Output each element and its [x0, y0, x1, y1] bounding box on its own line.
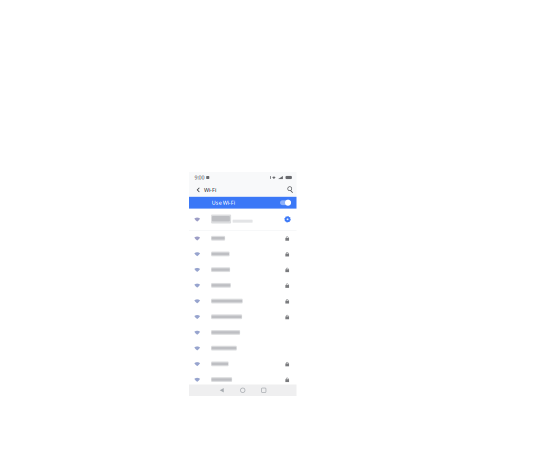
button[interactable]: [189, 209, 296, 230]
button[interactable]: [189, 230, 296, 246]
button[interactable]: [189, 340, 296, 356]
button[interactable]: [189, 309, 296, 325]
staticText: Use Wi-Fi: [212, 199, 235, 206]
button[interactable]: [189, 246, 296, 262]
button[interactable]: [189, 277, 296, 293]
staticText: Wi-Fi: [204, 186, 216, 193]
button[interactable]: Back: [193, 183, 202, 197]
button[interactable]: [189, 293, 296, 309]
button[interactable]: [189, 356, 296, 372]
staticText: 9:00: [195, 174, 205, 181]
button[interactable]: Recents: [257, 384, 270, 396]
button[interactable]: Search: [286, 183, 295, 197]
button[interactable]: [189, 372, 296, 387]
button[interactable]: Back: [215, 384, 228, 396]
button[interactable]: Use Wi-Fi: [189, 197, 296, 209]
button[interactable]: Home: [236, 384, 249, 396]
button[interactable]: [189, 262, 296, 277]
button[interactable]: [189, 325, 296, 340]
